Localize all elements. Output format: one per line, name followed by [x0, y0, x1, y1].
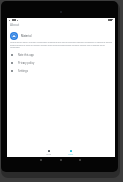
staticText: About	[68, 153, 74, 155]
button[interactable]: Rate this app	[7, 51, 115, 59]
staticText: Home	[46, 153, 52, 155]
button[interactable]: Settings	[7, 67, 115, 75]
staticText: Lorem ipsum dolor sit amet consectetur a…	[10, 41, 112, 48]
staticText: Material	[21, 34, 32, 38]
staticText: Rate this app	[18, 53, 34, 57]
button[interactable]: Home	[41, 149, 56, 156]
button[interactable]: About	[63, 149, 78, 156]
button[interactable]: Privacy policy	[7, 59, 115, 67]
staticText: Settings	[18, 69, 28, 73]
staticText: Privacy policy	[18, 61, 35, 65]
staticText: About	[10, 23, 20, 27]
